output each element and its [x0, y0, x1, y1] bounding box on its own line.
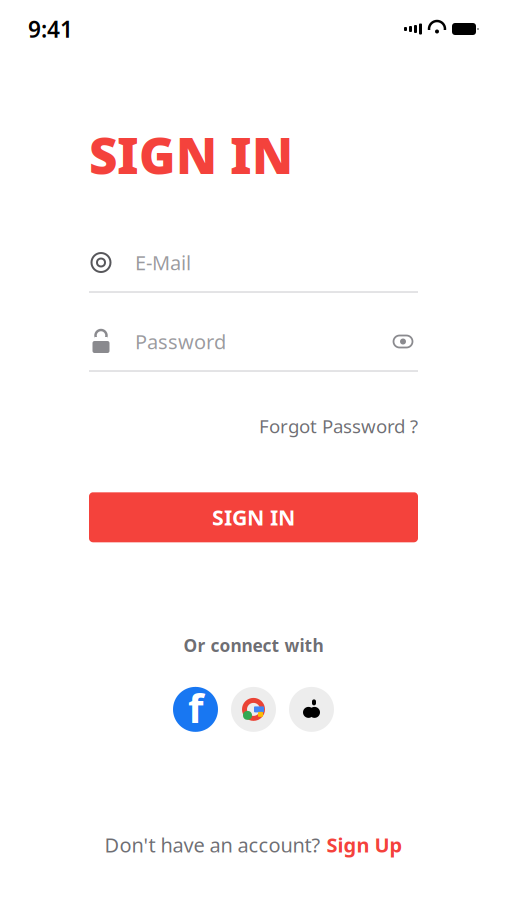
button[interactable]: Don't have an account?	[94, 823, 412, 866]
staticText: SIGN IN	[89, 122, 293, 187]
staticText: Forgot Password ?	[259, 413, 418, 438]
button[interactable]: Sign in with Apple	[289, 687, 334, 732]
staticText: Or connect with	[183, 634, 323, 657]
button[interactable]: Show password	[388, 326, 418, 356]
staticText: f	[188, 681, 203, 734]
staticText: E-Mail	[135, 249, 191, 276]
staticText: Password	[135, 328, 226, 355]
staticText: Sign Up	[326, 831, 402, 858]
staticText: SIGN IN	[212, 503, 295, 531]
button[interactable]: SIGN IN	[89, 492, 418, 542]
staticText: Don't have an account?	[104, 831, 320, 858]
button[interactable]: Sign in with Google	[231, 687, 276, 732]
button[interactable]: Forgot Password ?	[259, 407, 418, 444]
staticText: 9:41	[28, 14, 73, 44]
button[interactable]: Sign in with Facebook	[173, 687, 218, 732]
